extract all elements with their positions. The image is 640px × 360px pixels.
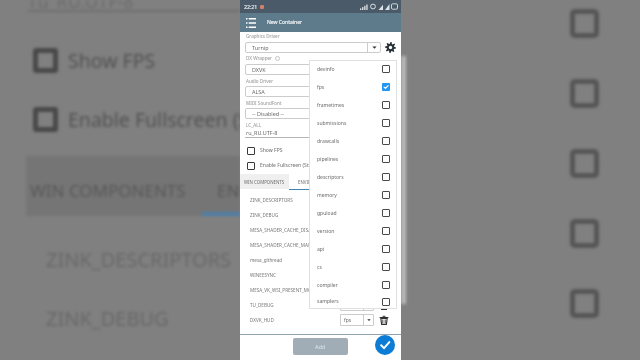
button[interactable]: Delete xyxy=(378,269,389,280)
staticText: descriptors xyxy=(317,174,382,181)
staticText: -- Disabled -- xyxy=(252,110,397,117)
staticText: cs xyxy=(317,264,382,271)
staticText: mesa_glthread xyxy=(250,257,340,263)
button[interactable]: ZINK_DEBUG xyxy=(250,207,389,222)
staticText: ALSA xyxy=(252,88,397,95)
staticText: DX Wrapper xyxy=(246,55,272,61)
button[interactable]: ENVIRONMENT xyxy=(289,174,338,189)
staticText: Add xyxy=(315,343,326,351)
button[interactable]: drawcalls xyxy=(317,132,390,150)
staticText: Audio Driver xyxy=(246,78,274,84)
button[interactable]: Delete xyxy=(378,254,389,265)
button[interactable]: ALSA xyxy=(245,86,397,97)
button[interactable]: devinfo xyxy=(317,60,390,78)
staticText: ENVIRONMENT xyxy=(298,179,330,185)
button[interactable]: DXVK_HUD xyxy=(250,312,389,327)
staticText: samplers xyxy=(317,298,382,305)
staticText: Show FPS xyxy=(68,47,156,74)
staticText: drawcalls xyxy=(317,138,382,145)
staticText: WINEESYNC xyxy=(250,272,340,278)
staticText: New Container xyxy=(267,19,303,26)
staticText: Graphics Driver xyxy=(246,33,280,39)
staticText: MIDI SoundFont xyxy=(246,100,282,106)
button[interactable]: version xyxy=(317,222,390,240)
staticText: version xyxy=(317,228,382,235)
button[interactable]: DRIVES xyxy=(338,174,401,189)
button[interactable]: Delete xyxy=(378,314,389,325)
button[interactable]: Enable Fullscreen (Stretched) xyxy=(247,159,401,172)
button[interactable]: WIN COMPONENTS xyxy=(240,174,289,189)
staticText: MESA_SHADER_CACHE_DISABLE xyxy=(250,227,340,233)
button[interactable]: Delete xyxy=(378,239,389,250)
staticText: compiler xyxy=(317,282,382,289)
button[interactable]: MESA_SHADER_CACHE_MAX_SIZE xyxy=(250,237,389,252)
staticText: ZINK_DESCRIPTORS xyxy=(250,197,340,203)
staticText: DXVK_HUD xyxy=(250,317,340,323)
button[interactable]: Confirm xyxy=(375,335,395,355)
button[interactable]: Delete xyxy=(378,209,389,220)
button[interactable]: api xyxy=(317,240,390,258)
button[interactable]: Show FPS xyxy=(247,144,401,157)
staticText: submissions xyxy=(317,120,382,127)
staticText: devinfo xyxy=(317,66,382,73)
button[interactable]: pipelines xyxy=(317,150,390,168)
button[interactable]: cs xyxy=(317,258,390,276)
button[interactable]: compiler xyxy=(317,276,390,294)
button[interactable]: MESA_VK_WSI_PRESENT_MODE xyxy=(250,282,389,297)
staticText: Show FPS xyxy=(260,147,283,154)
button[interactable]: submissions xyxy=(317,114,390,132)
button[interactable]: fps xyxy=(317,78,390,96)
button[interactable]: Driver settings xyxy=(384,41,397,54)
button[interactable]: Turnip xyxy=(245,42,381,53)
button[interactable]: ZINK_DESCRIPTORS xyxy=(250,192,389,207)
staticText: pipelines xyxy=(317,156,382,163)
staticText: Turnip xyxy=(252,44,367,51)
staticText: api xyxy=(317,246,382,253)
staticText: gpuload xyxy=(317,210,382,217)
button[interactable]: gpuload xyxy=(317,204,390,222)
staticText: LC_ALL xyxy=(246,122,262,128)
button[interactable]: frametimes xyxy=(317,96,390,114)
staticText: Enable Fullscreen (S xyxy=(68,106,250,133)
button[interactable]: Delete xyxy=(378,224,389,235)
staticText: ZINK_DESCRIPTORS xyxy=(46,246,232,273)
staticText: WIN COMPONENTS xyxy=(244,179,285,185)
button[interactable]: -- Disabled -- xyxy=(245,108,397,119)
button[interactable]: Add xyxy=(293,338,348,355)
button[interactable]: Delete xyxy=(378,194,389,205)
staticText: ZINK_DEBUG xyxy=(46,305,169,332)
staticText: memory xyxy=(317,192,382,199)
button[interactable]: WINEESYNC xyxy=(250,267,389,282)
button[interactable]: DXVK xyxy=(245,64,397,75)
button[interactable]: Delete xyxy=(378,284,389,295)
button[interactable]: memory xyxy=(317,186,390,204)
button[interactable]: TU_DEBUG xyxy=(250,297,389,312)
staticText: fps xyxy=(344,317,363,324)
staticText: fps xyxy=(317,84,382,91)
staticText: EN xyxy=(217,179,240,202)
staticText: ZINK_DEBUG xyxy=(250,212,340,218)
staticText: TU_DEBUG xyxy=(250,302,340,308)
staticText: Enable Fullscreen (Stretched) xyxy=(260,162,329,169)
button[interactable]: descriptors xyxy=(317,168,390,186)
button[interactable]: Delete xyxy=(378,299,389,310)
button[interactable]: Menu xyxy=(243,15,259,31)
staticText: ru_RU.UTF-8 xyxy=(246,129,278,136)
button[interactable]: samplers xyxy=(317,294,390,309)
staticText: DXVK xyxy=(252,66,397,73)
staticText: frametimes xyxy=(317,102,382,109)
button[interactable]: MESA_SHADER_CACHE_DISABLE xyxy=(250,222,389,237)
staticText: MESA_SHADER_CACHE_MAX_SIZE xyxy=(250,242,340,248)
staticText: WIN COMPONENTS xyxy=(30,179,186,202)
button[interactable]: mesa_glthread xyxy=(250,252,389,267)
staticText: MESA_VK_WSI_PRESENT_MODE xyxy=(250,287,340,293)
